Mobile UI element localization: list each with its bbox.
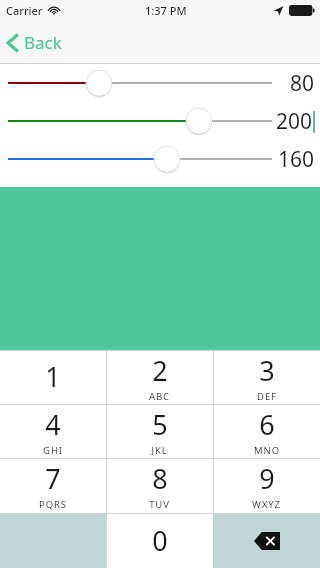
button[interactable]: 3 <box>213 350 320 404</box>
staticText: 6 <box>259 406 275 443</box>
button[interactable]: 5 <box>106 404 213 458</box>
staticText: Back <box>24 31 62 54</box>
button[interactable]: Delete <box>213 513 320 568</box>
staticText: ABC <box>149 390 170 403</box>
staticText: 2 <box>152 352 168 389</box>
staticText: GHI <box>43 444 63 457</box>
staticText: 160 <box>278 145 315 174</box>
button[interactable]: 8 <box>106 458 213 513</box>
staticText: 80 <box>290 69 315 98</box>
staticText: WXYZ <box>252 498 281 511</box>
button[interactable]: 4 <box>0 404 106 458</box>
staticText: 200 <box>276 107 313 136</box>
staticText: 3 <box>259 352 275 389</box>
staticText: JKL <box>151 444 168 457</box>
staticText: 5 <box>152 406 168 443</box>
staticText: 8 <box>152 460 168 497</box>
staticText: DEF <box>257 390 277 403</box>
staticText: MNO <box>254 444 280 457</box>
staticText: Carrier <box>6 3 43 18</box>
button[interactable]: 1 <box>0 350 106 404</box>
button[interactable]: 0 <box>106 513 213 568</box>
button[interactable]: Back <box>6 31 62 54</box>
staticText: 4 <box>45 406 61 443</box>
staticText: 9 <box>259 460 275 497</box>
button[interactable]: 6 <box>213 404 320 458</box>
button[interactable]: 7 <box>0 458 106 513</box>
staticText: TUV <box>149 498 170 511</box>
staticText: 7 <box>45 460 61 497</box>
button[interactable]: 2 <box>106 350 213 404</box>
staticText: 0 <box>152 522 168 559</box>
staticText: 1 <box>45 358 61 395</box>
button[interactable]: 9 <box>213 458 320 513</box>
staticText: 1:37 PM <box>145 3 187 18</box>
staticText: PQRS <box>39 498 67 511</box>
